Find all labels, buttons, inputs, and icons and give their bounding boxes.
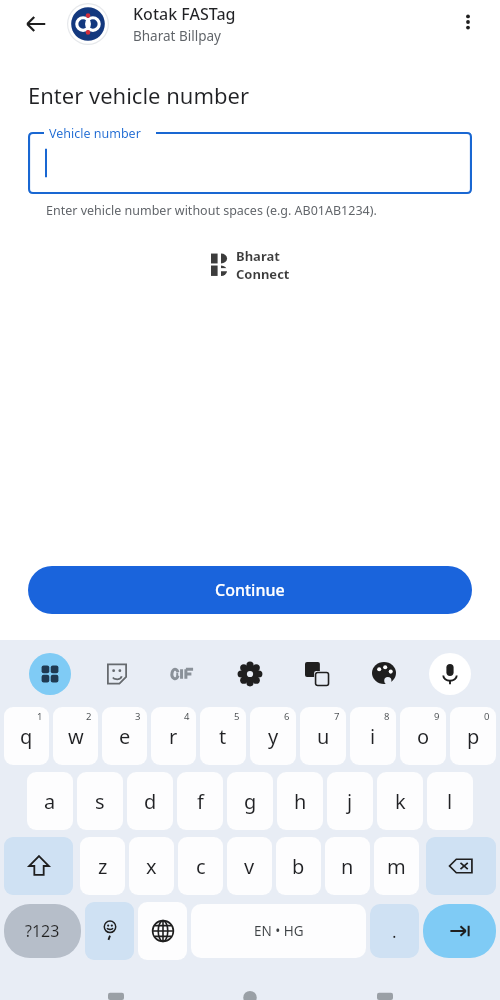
button[interactable]: s [77, 772, 123, 830]
staticText: Enter vehicle number [28, 80, 249, 110]
staticText: Bharat [236, 247, 280, 265]
staticText: Enter vehicle number without spaces (e.g… [46, 202, 377, 219]
staticText: x [146, 853, 157, 880]
button[interactable]: i [350, 707, 396, 765]
button[interactable]: Change language [138, 902, 187, 960]
staticText: 7 [334, 710, 340, 723]
button[interactable]: b [276, 837, 321, 895]
staticText: Connect [236, 265, 290, 283]
staticText: Continue [215, 579, 285, 601]
button[interactable]: p [450, 707, 496, 765]
button[interactable]: y [250, 707, 296, 765]
button[interactable]: GIF [162, 653, 204, 695]
staticText: m [387, 853, 406, 880]
staticText: u [317, 723, 330, 750]
staticText: y [268, 723, 279, 750]
staticText: 5 [234, 710, 240, 723]
staticText: 0 [484, 710, 490, 723]
button[interactable]: q [4, 707, 49, 765]
button[interactable]: v [227, 837, 272, 895]
staticText: Bharat Billpay [133, 27, 221, 45]
button[interactable]: Home [231, 970, 269, 1000]
staticText: b [292, 853, 305, 880]
staticText: s [95, 788, 105, 815]
button[interactable]: Back [14, 2, 58, 46]
staticText: Kotak FASTag [133, 3, 236, 25]
button[interactable]: r [151, 707, 196, 765]
button[interactable]: j [327, 772, 373, 830]
staticText: c [196, 853, 206, 880]
staticText: 1 [37, 710, 43, 723]
button[interactable]: Keyboard modes [29, 653, 71, 695]
button[interactable]: h [277, 772, 323, 830]
staticText: r [169, 723, 178, 750]
staticText: 9 [434, 710, 440, 723]
button[interactable]: Recents [366, 970, 404, 1000]
button[interactable]: Continue [28, 566, 472, 614]
staticText: o [417, 723, 430, 750]
staticText: . [392, 920, 397, 943]
button[interactable]: e [102, 707, 147, 765]
button[interactable]: Backspace [426, 837, 496, 895]
button[interactable]: o [400, 707, 446, 765]
staticText: EN • HG [254, 922, 304, 940]
button[interactable]: Settings [229, 653, 271, 695]
staticText: 6 [284, 710, 290, 723]
button[interactable] [28, 132, 472, 194]
staticText: w [68, 723, 84, 750]
button[interactable]: l [427, 772, 473, 830]
button[interactable]: f [177, 772, 223, 830]
button[interactable]: Themes [363, 653, 405, 695]
staticText: Vehicle number [49, 125, 141, 142]
button[interactable]: k [377, 772, 423, 830]
staticText: 4 [184, 710, 190, 723]
button[interactable]: x [129, 837, 174, 895]
staticText: v [244, 853, 255, 880]
button[interactable]: g [227, 772, 273, 830]
staticText: 2 [86, 710, 92, 723]
staticText: k [395, 788, 406, 815]
staticText: a [44, 788, 56, 815]
button[interactable]: a [27, 772, 73, 830]
button[interactable]: EN • HG [191, 904, 366, 958]
button[interactable]: ?123 [4, 904, 81, 958]
staticText: f [197, 788, 204, 815]
button[interactable]: More options [446, 0, 490, 44]
button[interactable]: Stickers [96, 653, 138, 695]
staticText: i [370, 723, 376, 750]
button[interactable]: z [80, 837, 125, 895]
button[interactable]: c [178, 837, 223, 895]
staticText: g [244, 788, 257, 815]
button[interactable]: . [370, 904, 419, 958]
button[interactable]: w [53, 707, 98, 765]
button[interactable]: Translate [296, 653, 338, 695]
button[interactable]: Emoji [85, 902, 134, 960]
button[interactable]: Back [97, 970, 135, 1000]
button[interactable]: Shift [4, 837, 73, 895]
button[interactable]: d [127, 772, 173, 830]
button[interactable]: Enter [423, 904, 496, 958]
button[interactable]: t [200, 707, 246, 765]
button[interactable]: Voice input [429, 653, 471, 695]
staticText: 3 [135, 710, 141, 723]
staticText: h [294, 788, 307, 815]
button[interactable]: n [325, 837, 370, 895]
staticText: 8 [384, 710, 390, 723]
staticText: d [144, 788, 157, 815]
staticText: n [341, 853, 354, 880]
staticText: z [98, 853, 108, 880]
button[interactable]: m [374, 837, 419, 895]
button[interactable]: u [300, 707, 346, 765]
staticText: p [467, 723, 480, 750]
staticText: q [20, 723, 33, 750]
staticText: l [447, 788, 453, 815]
staticText: t [219, 723, 227, 750]
staticText: j [347, 788, 353, 815]
staticText: ?123 [25, 920, 60, 942]
staticText: e [119, 723, 131, 750]
